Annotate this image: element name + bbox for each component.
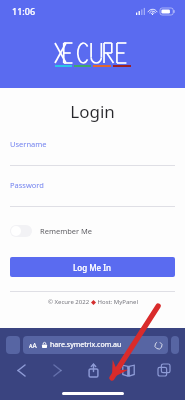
button[interactable]: Forward — [46, 359, 68, 381]
button[interactable]: Share — [82, 359, 104, 381]
button[interactable]: Log Me In — [10, 257, 175, 277]
staticText: ᴀA — [29, 341, 37, 350]
staticText: 11:06 — [12, 5, 36, 17]
other: Reload — [155, 342, 162, 349]
staticText: Password — [10, 180, 44, 190]
button[interactable] — [171, 336, 179, 354]
staticText: Log Me In — [73, 262, 112, 273]
button[interactable]: Back — [10, 359, 32, 381]
staticText: hare.symetrix.com.au — [50, 340, 122, 350]
button[interactable]: Bookmarks — [117, 359, 139, 381]
staticText: Username — [10, 139, 47, 149]
button[interactable] — [6, 336, 20, 354]
staticText: © Xecure 2022 — [48, 298, 91, 306]
button[interactable]: ᴀA — [23, 336, 168, 354]
button[interactable]: Password — [10, 180, 175, 207]
staticText: Login — [10, 100, 175, 123]
button[interactable]: Tabs — [153, 359, 175, 381]
staticText: Host: MyPanel — [96, 298, 138, 306]
staticText: Remember Me — [40, 226, 93, 236]
button[interactable]: Username — [10, 139, 175, 166]
button[interactable]: Remember Me — [10, 225, 175, 237]
